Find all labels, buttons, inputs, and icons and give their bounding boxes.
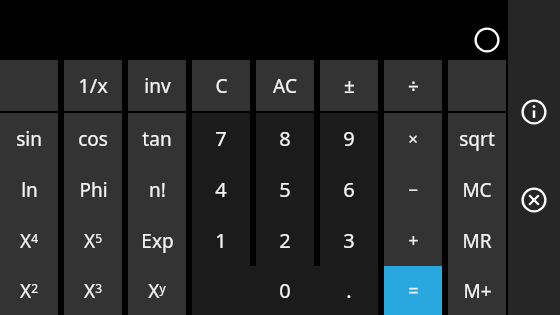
- staticText: sqrt: [459, 126, 495, 152]
- staticText: Exp: [141, 228, 174, 254]
- button[interactable]: MR: [448, 215, 506, 266]
- button[interactable]: .: [320, 266, 378, 315]
- button[interactable]: Exp: [128, 215, 186, 266]
- button[interactable]: X4: [0, 215, 58, 266]
- staticText: X3: [84, 278, 102, 304]
- staticText: sin: [16, 126, 42, 152]
- staticText: .: [346, 277, 352, 304]
- button[interactable]: ×: [384, 113, 442, 164]
- button[interactable]: 4: [192, 164, 250, 215]
- staticText: MC: [462, 177, 492, 203]
- staticText: tan: [142, 126, 172, 152]
- staticText: −: [408, 178, 418, 201]
- button[interactable]: 3: [320, 215, 378, 266]
- button[interactable]: n!: [128, 164, 186, 215]
- staticText: MR: [462, 228, 492, 254]
- button[interactable]: ÷: [384, 60, 442, 111]
- staticText: n!: [149, 177, 166, 203]
- staticText: 7: [215, 125, 227, 152]
- button[interactable]: 1: [192, 215, 250, 266]
- staticText: ±: [344, 73, 355, 99]
- staticText: 3: [343, 227, 355, 254]
- staticText: =: [408, 278, 419, 303]
- button[interactable]: 5: [256, 164, 314, 215]
- staticText: M+: [463, 278, 492, 304]
- staticText: 5: [279, 176, 291, 203]
- button[interactable]: 1/x: [64, 60, 122, 111]
- staticText: cos: [78, 126, 108, 152]
- staticText: X4: [20, 228, 38, 254]
- button[interactable]: X2: [0, 266, 58, 315]
- staticText: 1/x: [78, 72, 108, 99]
- staticText: 0: [279, 277, 291, 304]
- staticText: ×: [408, 127, 418, 150]
- button[interactable]: tan: [128, 113, 186, 164]
- staticText: inv: [144, 73, 171, 99]
- staticText: 6: [343, 176, 355, 203]
- staticText: Phi: [79, 177, 108, 203]
- staticText: 1: [215, 227, 227, 254]
- staticText: C: [215, 73, 228, 99]
- button[interactable]: 7: [192, 113, 250, 164]
- staticText: 2: [279, 227, 291, 254]
- button[interactable]: Info: [521, 99, 547, 125]
- staticText: 9: [343, 125, 355, 152]
- staticText: X5: [84, 228, 102, 254]
- button[interactable]: cos: [64, 113, 122, 164]
- button[interactable]: 8: [256, 113, 314, 164]
- button[interactable]: 6: [320, 164, 378, 215]
- button[interactable]: inv: [128, 60, 186, 111]
- button[interactable]: Close: [521, 187, 547, 213]
- button[interactable]: Xy: [128, 266, 186, 315]
- staticText: ÷: [408, 73, 419, 99]
- button[interactable]: 9: [320, 113, 378, 164]
- button[interactable]: M+: [448, 266, 506, 315]
- button[interactable]: sqrt: [448, 113, 506, 164]
- button[interactable]: −: [384, 164, 442, 215]
- staticText: AC: [273, 73, 297, 99]
- button[interactable]: X3: [64, 266, 122, 315]
- button[interactable]: +: [384, 215, 442, 266]
- button[interactable]: ±: [320, 60, 378, 111]
- staticText: +: [408, 228, 419, 253]
- button[interactable]: ln: [0, 164, 58, 215]
- button[interactable]: Backspace: [474, 27, 500, 53]
- staticText: 4: [215, 176, 227, 203]
- button[interactable]: AC: [256, 60, 314, 111]
- button[interactable]: C: [192, 60, 250, 111]
- staticText: 8: [279, 125, 291, 152]
- staticText: ln: [21, 177, 38, 203]
- button[interactable]: =: [384, 266, 442, 315]
- button[interactable]: X5: [64, 215, 122, 266]
- button[interactable]: Phi: [64, 164, 122, 215]
- staticText: Xy: [148, 278, 166, 304]
- staticText: X2: [20, 278, 38, 304]
- button[interactable]: sin: [0, 113, 58, 164]
- button[interactable]: 2: [256, 215, 314, 266]
- button[interactable]: MC: [448, 164, 506, 215]
- button[interactable]: 0: [192, 266, 378, 315]
